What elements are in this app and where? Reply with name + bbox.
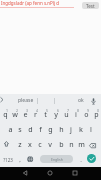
staticText: 6 <box>57 108 60 113</box>
button[interactable] <box>21 169 29 177</box>
button[interactable]: z <box>15 137 25 152</box>
staticText: 5 <box>46 108 49 113</box>
button[interactable]: m <box>76 137 86 152</box>
button[interactable]: o <box>81 107 91 122</box>
staticText: i <box>75 110 77 120</box>
staticText: Ingdgsladr (ap fenn s.nPlj d <box>1 0 59 6</box>
staticText: n <box>69 140 74 150</box>
button[interactable]: p <box>91 107 101 122</box>
button[interactable]: r <box>30 107 40 122</box>
button[interactable]: b <box>56 137 66 152</box>
button[interactable]: q <box>0 107 10 122</box>
staticText: 0 <box>97 108 100 113</box>
button[interactable] <box>91 98 96 105</box>
staticText: 2 <box>16 108 19 113</box>
button[interactable]: v <box>45 137 55 152</box>
button[interactable]: y <box>51 107 61 122</box>
button[interactable]: . <box>76 152 86 167</box>
button[interactable]: e <box>20 107 30 122</box>
staticText: Test <box>86 3 95 9</box>
staticText: . <box>80 156 82 164</box>
staticText: c <box>38 140 42 150</box>
button[interactable] <box>87 154 96 163</box>
button[interactable] <box>89 143 97 149</box>
staticText: please <box>18 97 34 104</box>
button[interactable]: Test <box>82 2 99 9</box>
staticText: 8 <box>77 108 80 113</box>
button[interactable]: f <box>35 122 45 137</box>
button[interactable]: k <box>76 122 86 137</box>
staticText: r <box>34 110 37 120</box>
staticText: u <box>64 110 69 120</box>
staticText: b <box>59 140 64 150</box>
staticText: l <box>90 125 92 135</box>
button[interactable]: l <box>86 122 96 137</box>
button[interactable] <box>71 169 79 177</box>
staticText: 4 <box>36 108 39 113</box>
button[interactable]: ok <box>70 95 91 105</box>
staticText: z <box>18 140 22 150</box>
button[interactable]: d <box>25 122 35 137</box>
staticText: a <box>8 125 13 135</box>
button[interactable]: t <box>40 107 50 122</box>
button[interactable]: , <box>15 152 25 167</box>
staticText: m <box>78 140 85 150</box>
button[interactable]: i <box>71 107 81 122</box>
button[interactable]: s <box>15 122 25 137</box>
staticText: j <box>70 125 72 135</box>
button[interactable]: c <box>35 137 45 152</box>
staticText: ?123 <box>3 157 13 163</box>
staticText: k <box>79 125 83 135</box>
staticText: p <box>94 110 99 120</box>
staticText: h <box>59 125 64 135</box>
button[interactable]: u <box>61 107 71 122</box>
staticText: 7 <box>67 108 70 113</box>
staticText: v <box>48 140 52 150</box>
button[interactable]: ?123 <box>0 152 15 167</box>
staticText: ok <box>78 97 84 104</box>
button[interactable]: English <box>40 155 73 163</box>
staticText: 3 <box>26 108 29 113</box>
staticText: q <box>3 110 8 120</box>
staticText: 9 <box>87 108 90 113</box>
button[interactable] <box>27 156 34 163</box>
button[interactable]: please <box>12 95 39 105</box>
staticText: 1 <box>6 108 9 113</box>
button[interactable]: w <box>10 107 20 122</box>
staticText: o <box>84 110 89 120</box>
staticText: , <box>19 156 21 164</box>
button[interactable] <box>4 141 10 148</box>
staticText: d <box>28 125 33 135</box>
button[interactable] <box>46 169 54 177</box>
staticText: s <box>18 125 22 135</box>
button[interactable]: g <box>45 122 55 137</box>
staticText: f <box>39 125 42 135</box>
staticText: y <box>54 110 58 120</box>
staticText: w <box>12 110 18 120</box>
button[interactable]: j <box>66 122 76 137</box>
button[interactable]: n <box>66 137 76 152</box>
staticText: g <box>48 125 53 135</box>
button[interactable]: a <box>5 122 15 137</box>
staticText: x <box>28 140 32 150</box>
staticText: English <box>51 157 63 162</box>
staticText: t <box>44 110 47 120</box>
button[interactable]: x <box>25 137 35 152</box>
button[interactable]: h <box>56 122 66 137</box>
staticText: e <box>23 110 28 120</box>
